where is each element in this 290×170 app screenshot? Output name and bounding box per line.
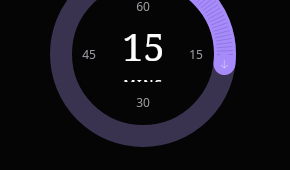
button[interactable]: 15 [93, 20, 193, 82]
staticText: 15 [189, 46, 203, 62]
staticText: 60 [136, 0, 150, 14]
button[interactable]: Duration dial, 15 minutes [0, 0, 290, 170]
staticText: 30 [136, 94, 150, 110]
staticText: 45 [82, 46, 96, 62]
staticText: 15 [122, 20, 165, 72]
staticText: MINS [123, 75, 164, 82]
